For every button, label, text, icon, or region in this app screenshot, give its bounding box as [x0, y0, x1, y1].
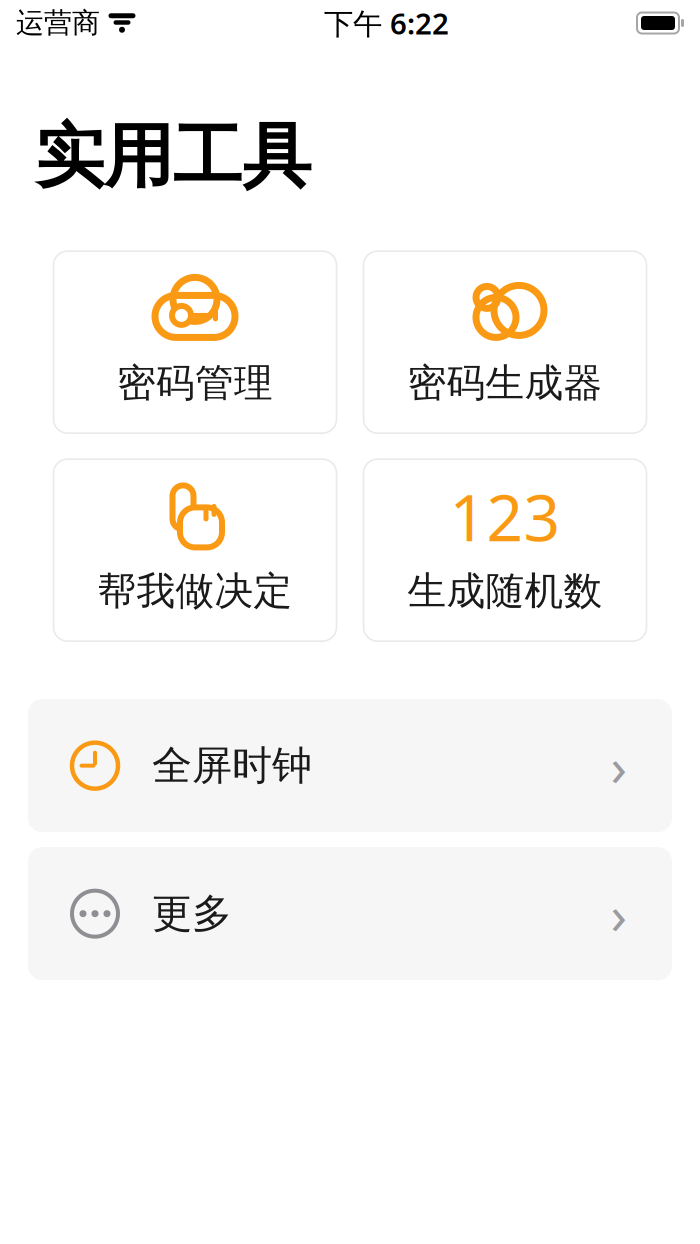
staticText: ›: [610, 730, 627, 801]
staticText: 密码管理: [117, 359, 273, 407]
staticText: 生成随机数: [407, 567, 602, 615]
staticText: 帮我做决定: [97, 567, 292, 615]
staticText: 123: [449, 474, 560, 559]
button[interactable]: 帮我做决定: [53, 459, 336, 641]
staticText: ›: [610, 878, 627, 949]
staticText: 运营商: [16, 6, 100, 40]
staticText: 密码生成器: [407, 359, 602, 407]
button[interactable]: 全屏时钟: [28, 699, 672, 832]
button[interactable]: 密码管理: [53, 251, 336, 433]
button[interactable]: 123: [363, 459, 646, 641]
button[interactable]: 密码生成器: [363, 251, 646, 433]
staticText: 下午 6:22: [324, 3, 449, 42]
staticText: 更多: [152, 889, 232, 938]
button[interactable]: 更多: [28, 847, 672, 980]
staticText: 全屏时钟: [152, 741, 312, 790]
staticText: 实用工具: [35, 114, 311, 199]
